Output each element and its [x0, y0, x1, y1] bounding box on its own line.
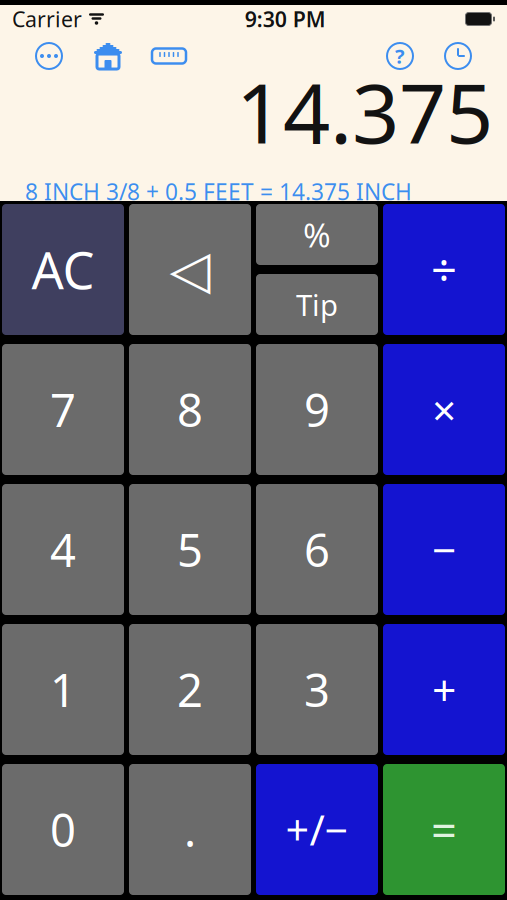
staticText: 4: [50, 519, 76, 580]
button[interactable]: 0: [2, 764, 124, 895]
button[interactable]: 6: [256, 484, 378, 615]
button[interactable]: 5: [129, 484, 251, 615]
staticText: 2: [177, 659, 203, 720]
staticText: 1: [50, 659, 76, 720]
button[interactable]: ÷: [383, 204, 505, 335]
staticText: ◁: [169, 239, 210, 300]
staticText: 6: [304, 519, 330, 580]
button[interactable]: Help: [385, 41, 415, 71]
staticText: 8: [177, 379, 203, 440]
staticText: 3: [304, 659, 330, 720]
staticText: ×: [432, 381, 456, 438]
button[interactable]: 7: [2, 344, 124, 475]
button[interactable]: 1: [2, 624, 124, 755]
staticText: Tip: [296, 285, 338, 324]
button[interactable]: +: [383, 624, 505, 755]
button[interactable]: =: [383, 764, 505, 895]
button[interactable]: 8: [129, 344, 251, 475]
staticText: ?: [395, 43, 405, 69]
staticText: 9:30 PM: [245, 5, 326, 33]
staticText: 0: [50, 799, 76, 860]
button[interactable]: History: [443, 41, 473, 71]
button[interactable]: Home: [92, 41, 124, 71]
staticText: .: [184, 799, 196, 860]
button[interactable]: Tip: [256, 274, 378, 335]
staticText: %: [303, 212, 331, 257]
button[interactable]: ×: [383, 344, 505, 475]
staticText: Carrier: [12, 5, 82, 33]
button[interactable]: %: [256, 204, 378, 265]
button[interactable]: 2: [129, 624, 251, 755]
button[interactable]: 4: [2, 484, 124, 615]
staticText: +: [432, 661, 456, 718]
staticText: AC: [31, 236, 94, 303]
button[interactable]: 3: [256, 624, 378, 755]
staticText: 9: [304, 379, 330, 440]
button[interactable]: Backspace: [129, 204, 251, 335]
button[interactable]: +/−: [256, 764, 378, 895]
staticText: +/−: [285, 802, 348, 857]
button[interactable]: Units: [150, 42, 188, 70]
button[interactable]: 9: [256, 344, 378, 475]
staticText: 5: [177, 519, 203, 580]
staticText: ÷: [431, 239, 457, 300]
button[interactable]: AC: [2, 204, 124, 335]
staticText: 8 INCH 3/8 + 0.5 FEET = 14.375 INCH: [25, 176, 412, 206]
button[interactable]: −: [383, 484, 505, 615]
button[interactable]: .: [129, 764, 251, 895]
staticText: 7: [50, 379, 76, 440]
button[interactable]: More options: [34, 41, 64, 71]
staticText: 14.375: [236, 56, 493, 166]
staticText: −: [432, 521, 456, 578]
staticText: =: [431, 799, 457, 860]
